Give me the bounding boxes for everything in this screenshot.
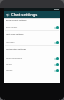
staticText: Read receipt settings [6,19,59,22]
staticText: Show notifications [6,57,53,60]
button[interactable]: Toggle [53,62,59,67]
button[interactable]: Vibrate [4,67,60,73]
staticText: Last seen [6,41,53,44]
staticText: Chat settings [11,12,38,18]
button[interactable]: Read receipt [4,24,60,30]
button[interactable]: Show notifications [4,55,60,61]
staticText: Last seen settings [6,33,59,36]
button[interactable]: Last seen [4,39,60,45]
button[interactable]: Notification settings [4,46,60,52]
staticText: Vibrate [6,69,53,72]
button[interactable]: Read receipt settings [4,17,60,23]
staticText: Notification settings [6,48,59,51]
button[interactable]: Back [4,11,11,18]
button[interactable]: Last seen settings [4,31,60,37]
button[interactable]: Toggle [53,40,59,45]
button[interactable]: Toggle [53,56,59,61]
staticText: Sound [6,63,53,66]
button[interactable]: Sound [4,61,60,67]
button[interactable]: Toggle [53,25,59,30]
staticText: Read receipt [6,26,53,29]
button[interactable]: Toggle [53,68,59,73]
